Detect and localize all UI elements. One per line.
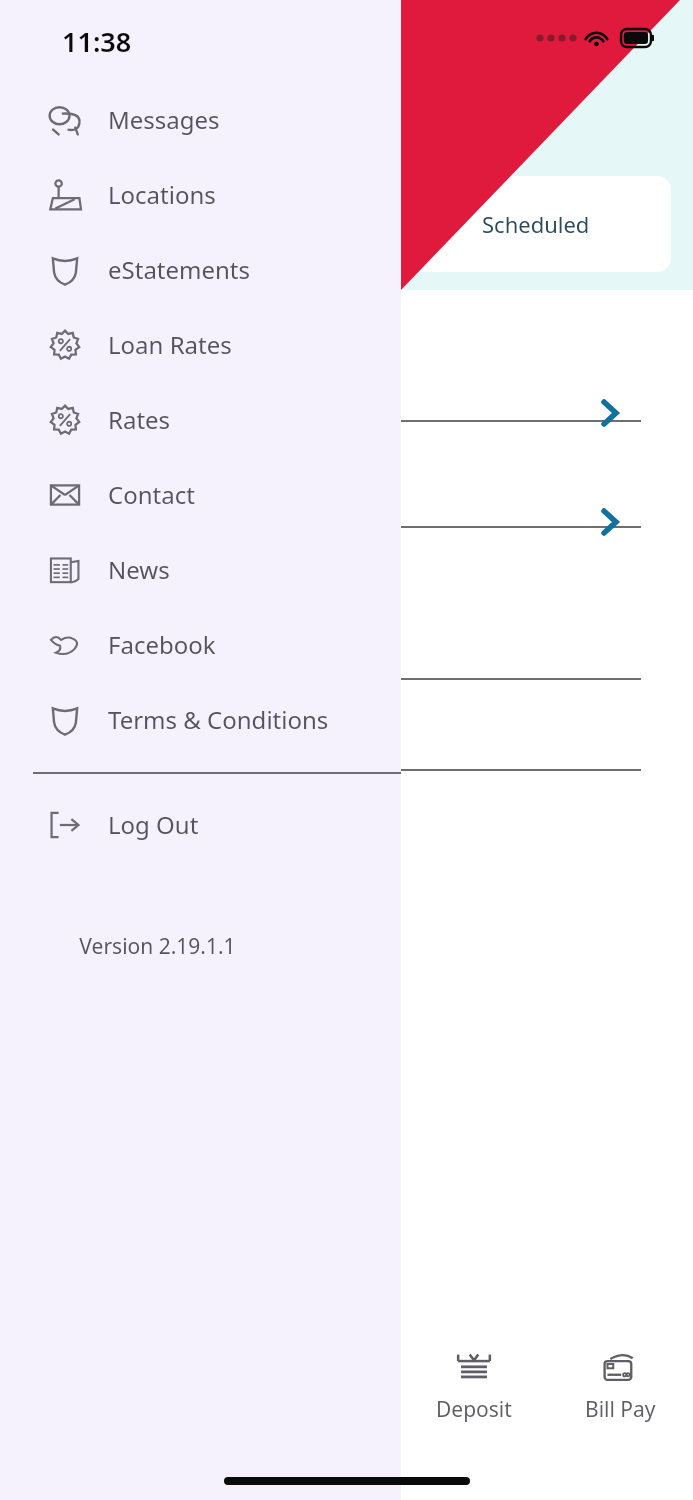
staticText: Deposit xyxy=(436,1395,512,1424)
button[interactable]: Locations xyxy=(0,157,401,232)
button[interactable]: eStatements xyxy=(0,232,401,307)
button[interactable]: Terms & Conditions xyxy=(0,682,401,757)
button[interactable]: News xyxy=(0,532,401,607)
button[interactable]: Log Out xyxy=(0,787,401,862)
staticText: Locations xyxy=(108,178,216,211)
staticText: Version 2.19.1.1 xyxy=(0,932,315,961)
staticText: Contact xyxy=(108,478,195,511)
other: Deposit xyxy=(456,1351,492,1387)
staticText: 11:38 xyxy=(62,23,132,60)
staticText: Bill Pay xyxy=(585,1395,656,1424)
button[interactable]: Rates xyxy=(0,382,401,457)
staticText: Messages xyxy=(108,103,220,136)
button[interactable]: Facebook xyxy=(0,607,401,682)
button[interactable]: Messages xyxy=(0,82,401,157)
button[interactable] xyxy=(401,293,672,421)
staticText: News xyxy=(108,553,170,586)
button[interactable]: Loan Rates xyxy=(0,307,401,382)
staticText: Terms & Conditions xyxy=(108,703,329,736)
staticText: Facebook xyxy=(108,628,216,661)
other: Bill Pay xyxy=(601,1351,639,1387)
button[interactable]: Scheduled xyxy=(401,176,671,272)
staticText: Rates xyxy=(108,403,171,436)
staticText: Scheduled xyxy=(482,209,590,239)
button[interactable]: Bill Pay xyxy=(547,1345,693,1430)
staticText: Log Out xyxy=(108,808,199,841)
staticText: Loan Rates xyxy=(108,328,232,361)
button[interactable]: Deposit xyxy=(401,1345,547,1430)
button[interactable]: Contact xyxy=(0,457,401,532)
button[interactable] xyxy=(401,421,672,527)
staticText: eStatements xyxy=(108,253,251,286)
